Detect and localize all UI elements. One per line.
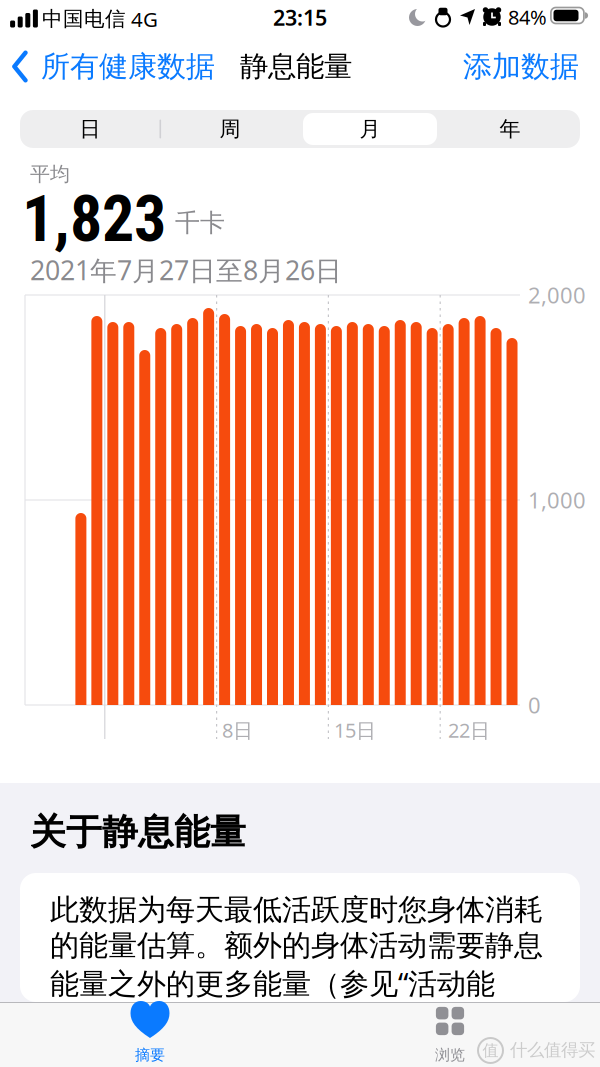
staticText: 23:15: [273, 3, 327, 32]
staticText: 添加数据: [463, 49, 579, 84]
button[interactable]: 添加数据: [0, 0, 579, 41]
button[interactable]: 摘要: [0, 0, 220, 64]
button[interactable]: 周: [160, 110, 300, 148]
staticText: 月: [359, 116, 380, 142]
staticText: 8日: [222, 717, 253, 743]
staticText: 日: [79, 116, 100, 142]
button[interactable]: 浏览: [0, 0, 220, 64]
staticText: 静息能量: [240, 49, 352, 84]
staticText: 2021年7月27日至8月26日: [30, 252, 342, 288]
staticText: 84%: [508, 4, 547, 30]
staticText: 年: [499, 116, 520, 142]
staticText: 22日: [448, 717, 490, 743]
staticText: 千卡: [175, 208, 225, 238]
staticText: 4G: [131, 5, 158, 33]
staticText: 浏览: [435, 1046, 465, 1064]
staticText: 什么值得买: [510, 1039, 595, 1061]
button[interactable]: 所有健康数据: [0, 0, 203, 41]
staticText: 平均: [30, 162, 70, 186]
button[interactable]: 日: [20, 110, 160, 148]
button[interactable]: 年: [440, 110, 580, 148]
staticText: 0: [528, 690, 541, 720]
staticText: 2,000: [528, 280, 586, 310]
staticText: 1,823: [22, 182, 166, 255]
staticText: 摘要: [135, 1046, 165, 1064]
staticText: 1,000: [528, 485, 586, 515]
staticText: 所有健康数据: [41, 49, 215, 84]
staticText: 中国电信: [42, 6, 126, 32]
staticText: 15日: [334, 717, 376, 743]
button[interactable]: 月: [300, 110, 440, 148]
staticText: 此数据为每天最低活跃度时您身体消耗的能量估算。额外的身体活动需要静息能量之外的更…: [50, 892, 543, 1041]
staticText: 值: [482, 1041, 498, 1060]
staticText: 关于静息能量: [30, 810, 246, 854]
staticText: 周: [219, 116, 240, 142]
